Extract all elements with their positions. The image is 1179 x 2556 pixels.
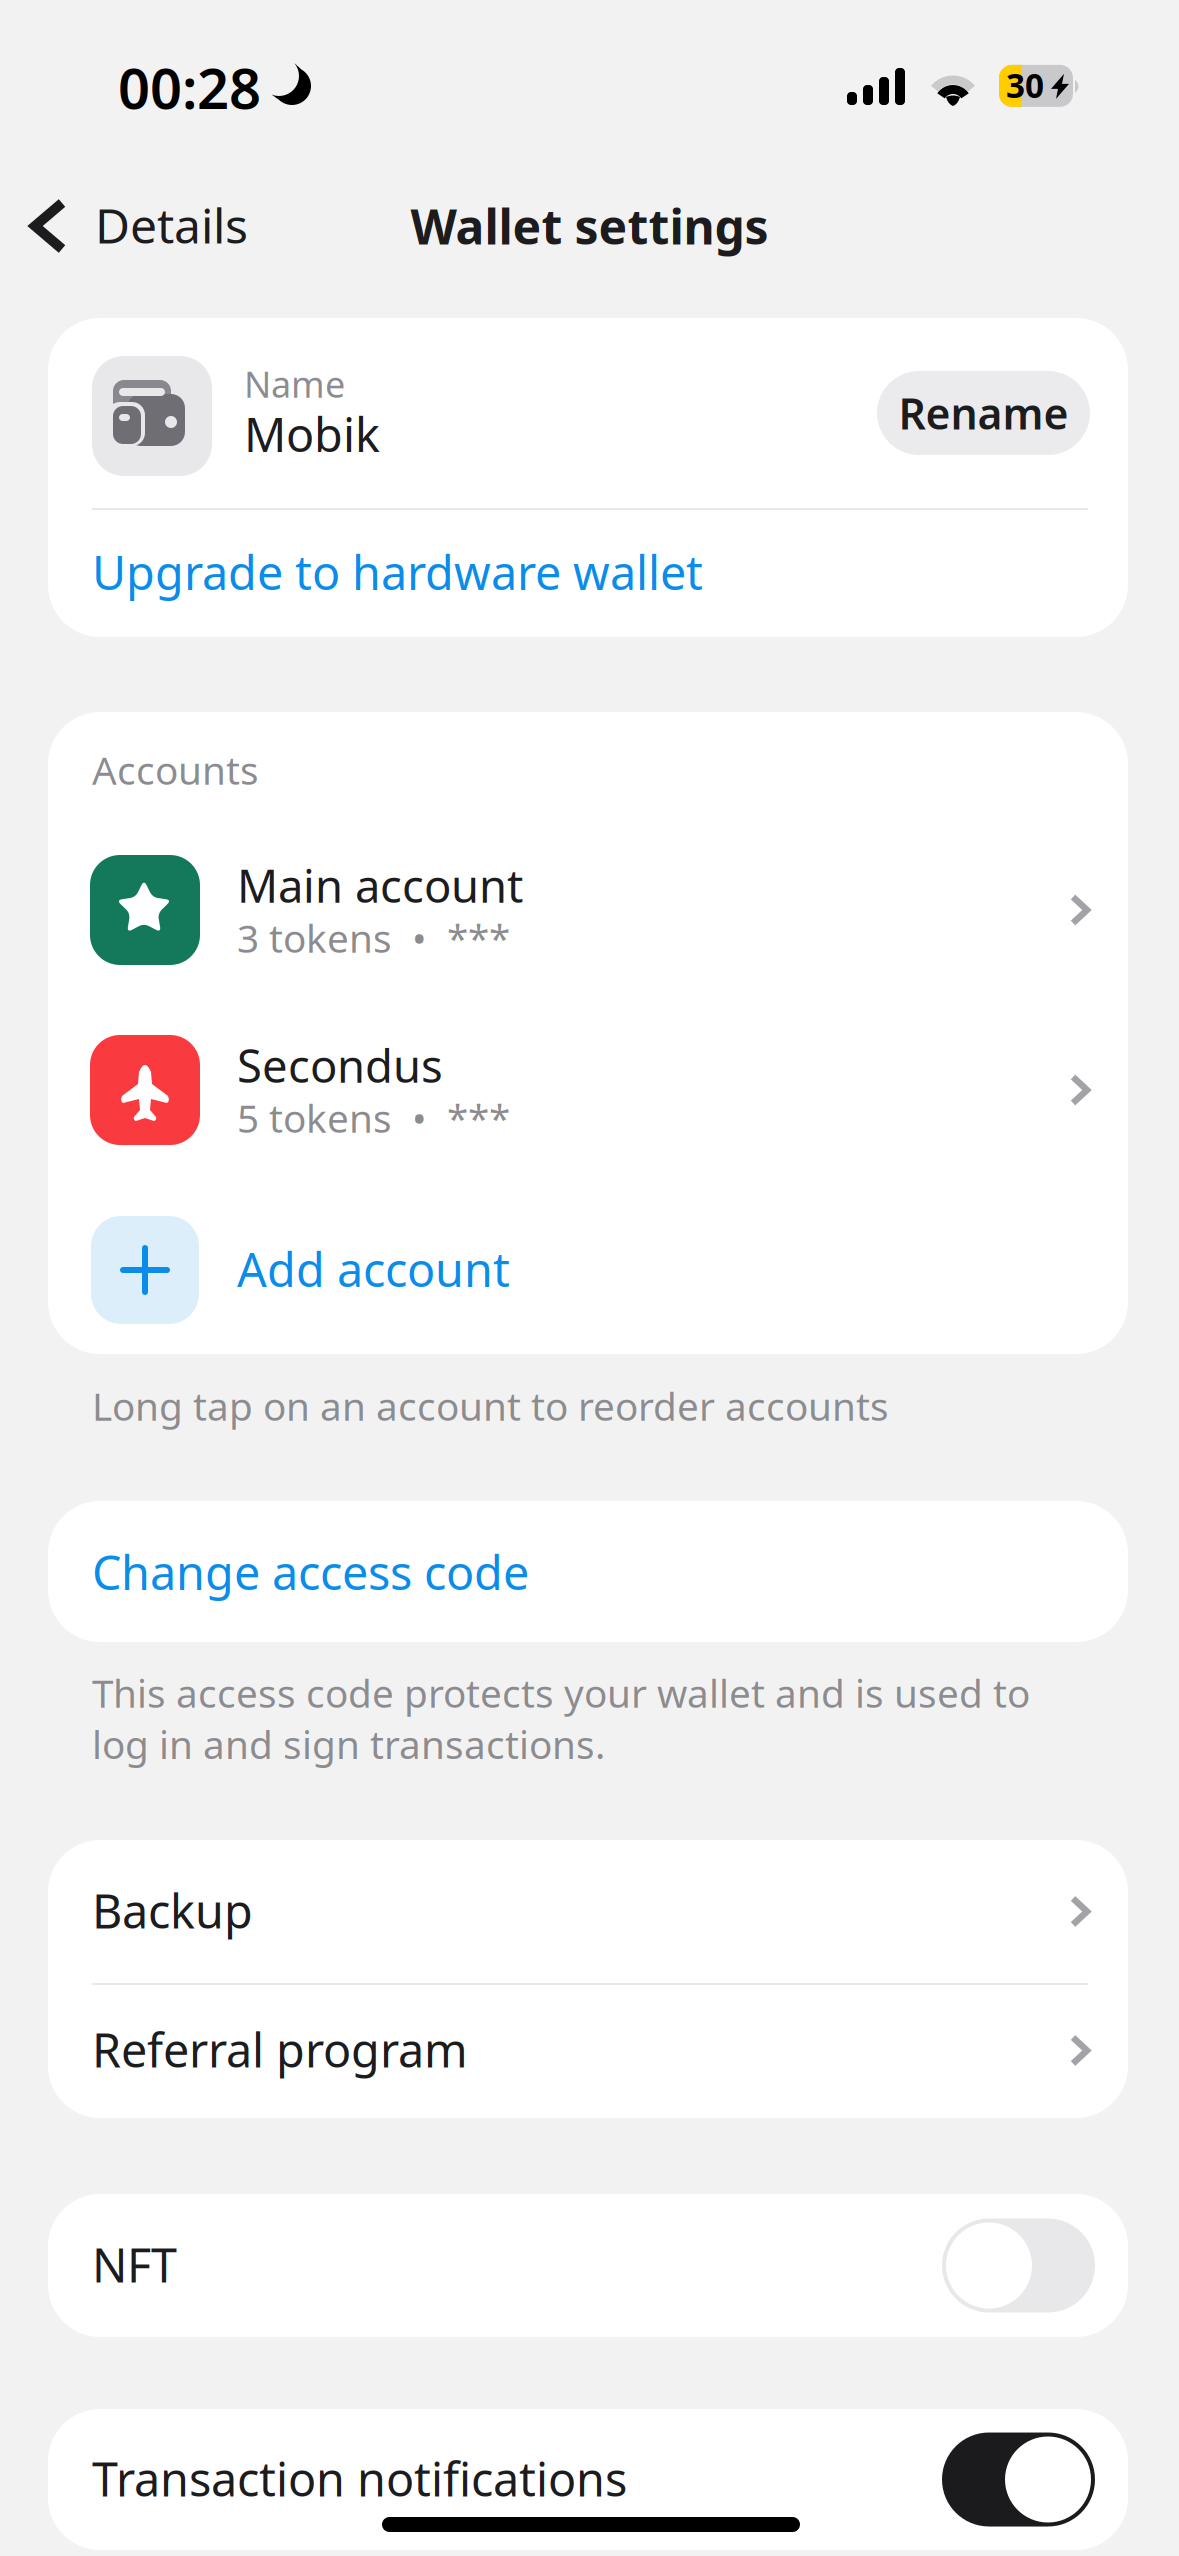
staticText: 5 tokens • ***: [237, 1092, 510, 1143]
staticText: 3 tokens • ***: [237, 912, 510, 963]
button[interactable]: Secondus: [48, 1014, 1128, 1166]
staticText: Change access code: [92, 1541, 529, 1603]
staticText: Referral program: [92, 2018, 468, 2080]
button[interactable]: Main account: [48, 834, 1128, 986]
button[interactable]: Change access code: [48, 1501, 1128, 1642]
staticText: This access code protects your wallet an…: [92, 1667, 1030, 1770]
button[interactable]: Details: [29, 179, 279, 279]
button[interactable]: Referral program: [48, 1983, 1128, 2118]
staticText: Mobik: [244, 403, 380, 465]
staticText: Wallet settings: [410, 194, 768, 258]
button[interactable]: Upgrade to hardware wallet: [48, 509, 1128, 637]
staticText: Accounts: [92, 744, 259, 795]
staticText: Name: [244, 360, 345, 408]
staticText: Secondus: [237, 1035, 443, 1095]
button[interactable]: Backup: [48, 1840, 1128, 1983]
staticText: NFT: [92, 2233, 177, 2295]
staticText: Details: [95, 193, 248, 257]
staticText: Backup: [92, 1879, 253, 1941]
button[interactable]: Rename: [877, 371, 1090, 455]
staticText: 30: [1006, 63, 1044, 107]
staticText: Rename: [898, 385, 1068, 441]
staticText: Transaction notifications: [92, 2447, 627, 2509]
button[interactable]: Add account: [48, 1195, 1128, 1345]
staticText: 00:28: [118, 50, 261, 124]
staticText: Long tap on an account to reorder accoun…: [92, 1380, 889, 1431]
staticText: Main account: [237, 855, 523, 915]
staticText: Upgrade to hardware wallet: [92, 541, 703, 603]
button[interactable]: Transaction notifications: [48, 2409, 1128, 2550]
staticText: Add account: [237, 1238, 510, 1300]
button[interactable]: NFT: [48, 2194, 1128, 2337]
